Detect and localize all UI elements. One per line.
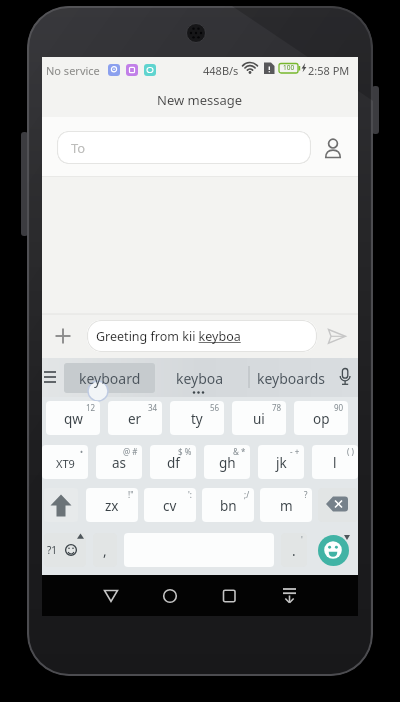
button[interactable]: !" — [86, 488, 138, 522]
button[interactable] — [318, 488, 358, 522]
staticText: !" — [128, 489, 134, 500]
button[interactable]: ( ) — [312, 445, 358, 479]
staticText: qw — [64, 410, 83, 428]
staticText: 448B/s — [203, 63, 239, 78]
staticText: $ % — [178, 446, 192, 457]
staticText: keyboards — [257, 369, 325, 388]
staticText: m — [280, 497, 293, 515]
staticText: keyboard — [79, 369, 141, 388]
button[interactable]: 90 — [294, 401, 348, 435]
button[interactable]: ;/ — [202, 488, 254, 522]
staticText: 78 — [272, 402, 282, 413]
staticText: ty — [191, 410, 203, 428]
staticText: @ # — [123, 446, 138, 457]
button[interactable]: & * — [204, 445, 250, 479]
button[interactable]: • — [42, 445, 88, 479]
staticText: - + — [290, 446, 300, 457]
staticText: jk — [276, 454, 287, 472]
staticText: ' — [301, 534, 303, 545]
button[interactable]: - + — [258, 445, 304, 479]
staticText: cv — [163, 497, 177, 515]
button[interactable]: ? — [260, 488, 312, 522]
button[interactable]: $ % — [150, 445, 196, 479]
staticText: XT9 — [56, 456, 75, 471]
staticText: 12 — [86, 402, 96, 413]
button[interactable] — [44, 533, 86, 567]
staticText: ( ) — [347, 446, 354, 457]
staticText: op — [313, 410, 330, 428]
staticText: ui — [253, 410, 265, 428]
staticText: as — [112, 454, 127, 472]
staticText: 34 — [148, 402, 158, 413]
button[interactable]: 12 — [46, 401, 100, 435]
button[interactable]: 34 — [108, 401, 162, 435]
staticText: gh — [219, 454, 236, 472]
staticText: 100 — [283, 63, 295, 72]
staticText: er — [128, 410, 142, 428]
button[interactable]: ': — [144, 488, 196, 522]
button[interactable] — [64, 363, 155, 393]
button[interactable]: 56 — [170, 401, 224, 435]
staticText: keyboa — [176, 369, 224, 388]
button[interactable]: 78 — [232, 401, 286, 435]
button[interactable] — [318, 535, 349, 566]
staticText: ': — [188, 489, 192, 500]
staticText: bn — [220, 497, 237, 515]
staticText: zx — [105, 497, 119, 515]
staticText: 90 — [334, 402, 344, 413]
button[interactable]: , — [93, 533, 117, 567]
staticText: No service — [46, 63, 100, 78]
staticText: df — [167, 454, 180, 472]
staticText: Greeting from kii keyboa — [96, 328, 241, 345]
staticText: . — [292, 542, 296, 560]
staticText: l — [333, 454, 337, 472]
button[interactable]: ' — [281, 533, 307, 567]
button[interactable]: @ # — [96, 445, 142, 479]
staticText: To — [71, 139, 86, 157]
staticText: ? — [304, 489, 308, 500]
staticText: ?1 — [47, 543, 58, 557]
staticText: New message — [157, 91, 243, 109]
button[interactable] — [44, 488, 78, 522]
staticText: & * — [233, 446, 246, 457]
staticText: 56 — [210, 402, 220, 413]
staticText: • — [80, 446, 84, 457]
staticText: ;/ — [244, 489, 250, 500]
staticText: 2:58 PM — [308, 63, 350, 78]
staticText: , — [103, 542, 107, 560]
